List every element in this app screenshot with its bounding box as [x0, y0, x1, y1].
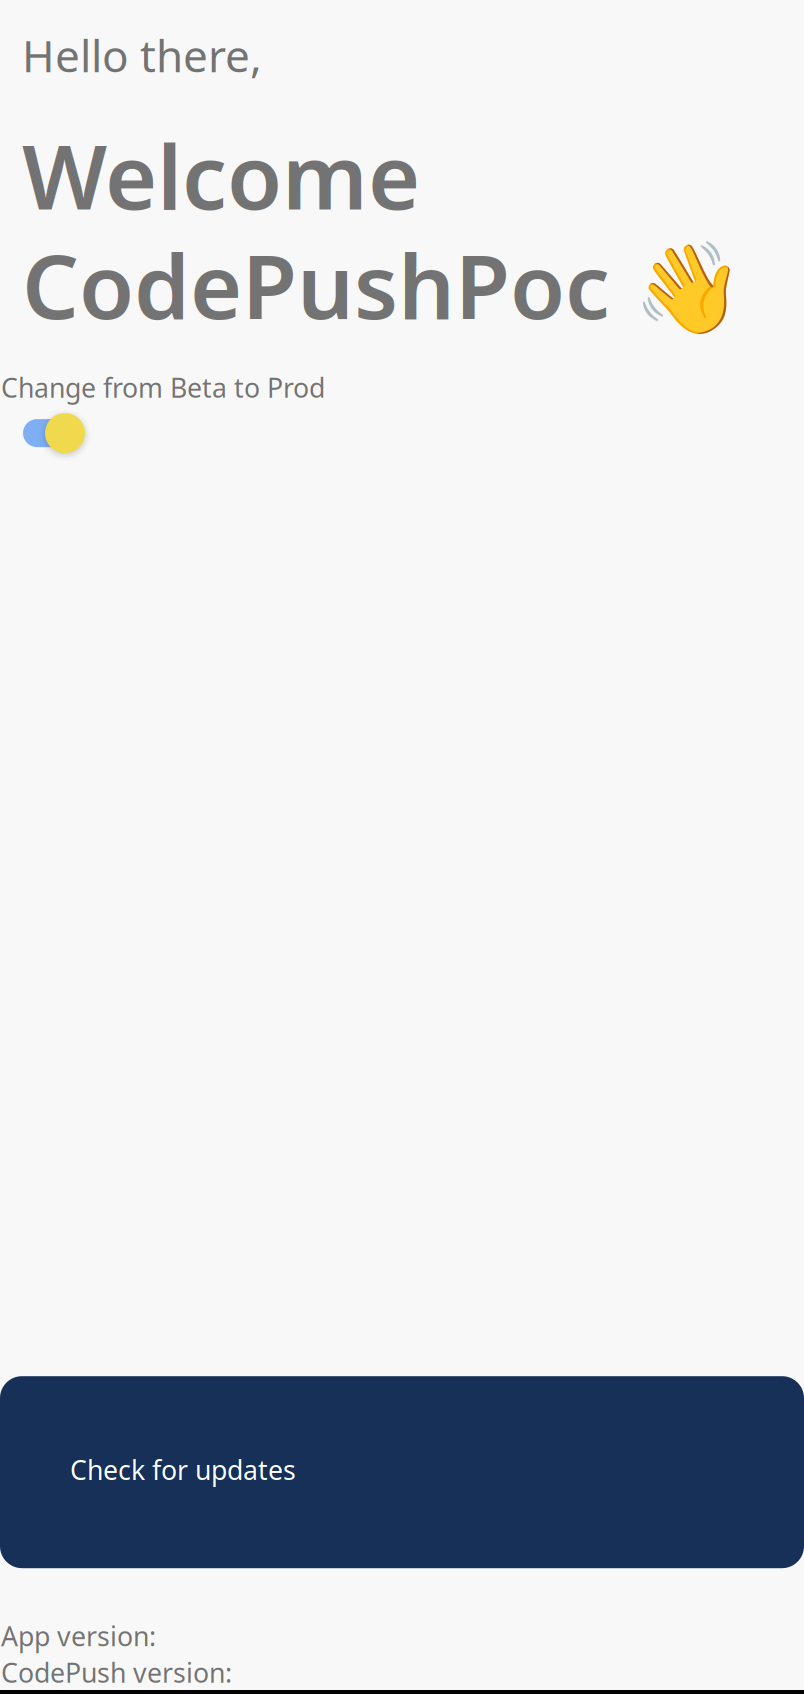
staticText: CodePush version: — [1, 1655, 232, 1690]
staticText: Change from Beta to Prod — [1, 370, 325, 405]
staticText: Welcome — [22, 115, 420, 234]
button[interactable]: Check for updates — [0, 1376, 804, 1568]
button[interactable]: Change from Beta to Prod — [0, 409, 112, 457]
staticText: Check for updates — [70, 1452, 296, 1487]
staticText: Hello there, — [22, 26, 262, 84]
staticText: CodePushPoc 👋 — [22, 225, 744, 344]
staticText: App version: — [1, 1618, 156, 1654]
